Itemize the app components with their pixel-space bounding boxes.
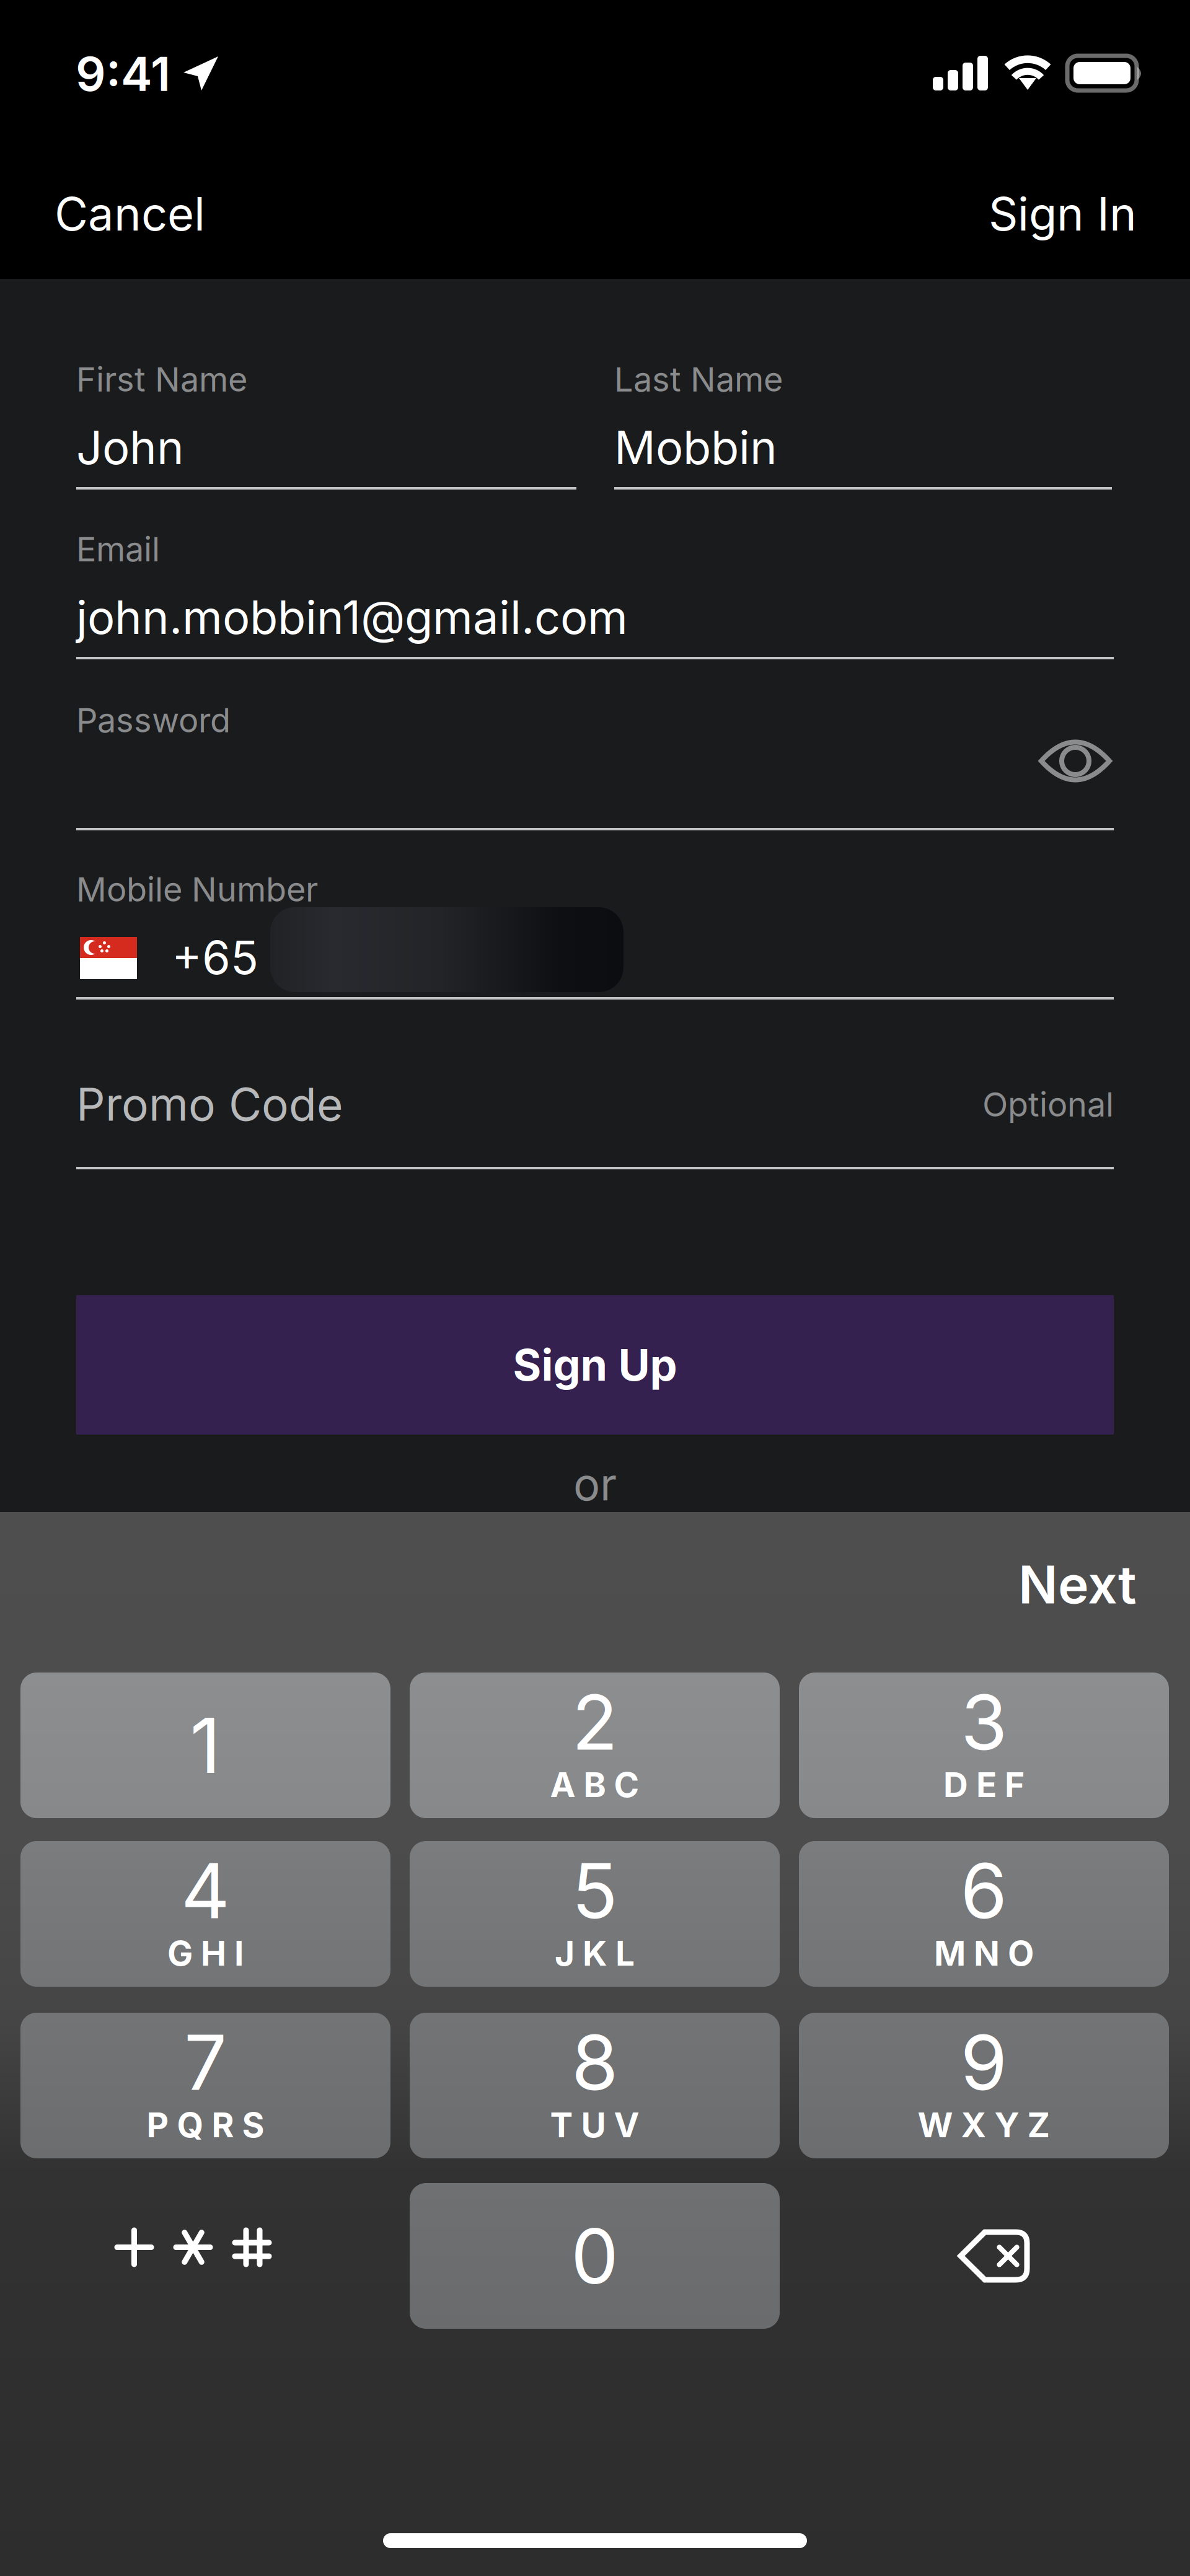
staticText: X (961, 2104, 986, 2145)
staticText: L (615, 1933, 635, 1974)
staticText: John (76, 420, 184, 475)
staticText: J (555, 1933, 575, 1974)
button[interactable]: 5 (410, 1841, 780, 1987)
staticText: 3 (961, 1676, 1007, 1768)
button[interactable]: Sign Up (76, 1295, 1114, 1435)
button[interactable]: Sign In (889, 186, 1137, 242)
button[interactable]: 2 (410, 1673, 780, 1818)
button[interactable]: Symbols (20, 2183, 390, 2329)
staticText: First Name (76, 359, 247, 399)
staticText: F (1005, 1764, 1025, 1805)
button[interactable]: Next (889, 1550, 1137, 1619)
staticText: Optional (982, 1084, 1114, 1124)
staticText: G (167, 1933, 193, 1974)
staticText: 2 (572, 1676, 618, 1768)
button[interactable]: Delete (799, 2183, 1169, 2329)
staticText: 9:41 (76, 45, 170, 102)
staticText: 6 (960, 1845, 1007, 1936)
staticText: +65 (172, 930, 258, 985)
staticText: H (201, 1933, 226, 1974)
staticText: W (918, 2104, 953, 2145)
button[interactable]: 1 (20, 1673, 390, 1818)
staticText: Promo Code (76, 1077, 343, 1132)
staticText: B (584, 1764, 606, 1805)
staticText: N (974, 1933, 1000, 1974)
staticText: Email (76, 529, 160, 569)
staticText: Q (177, 2104, 204, 2145)
staticText: Z (1027, 2104, 1050, 2145)
button[interactable]: 8 (410, 2013, 780, 2158)
staticText: john.mobbin1@gmail.com (76, 589, 628, 645)
staticText: Next (1018, 1553, 1137, 1616)
staticText: 9 (960, 2017, 1007, 2108)
button[interactable]: 4 (20, 1841, 390, 1987)
staticText: Cancel (55, 186, 205, 241)
button[interactable]: Show password (1038, 739, 1113, 783)
staticText: I (234, 1933, 244, 1974)
button[interactable]: 6 (799, 1841, 1169, 1987)
button[interactable]: 9 (799, 2013, 1169, 2158)
staticText: Y (994, 2104, 1019, 2145)
staticText: P (147, 2104, 169, 2145)
staticText: Sign In (989, 186, 1137, 241)
button[interactable]: 0 (410, 2183, 780, 2329)
staticText: M (934, 1933, 966, 1974)
staticText: 8 (571, 2017, 618, 2108)
staticText: E (976, 1764, 997, 1805)
button[interactable]: 7 (20, 2013, 390, 2158)
button[interactable]: 3 (799, 1673, 1169, 1818)
staticText: D (943, 1764, 968, 1805)
staticText: Mobile Number (76, 869, 318, 909)
staticText: V (614, 2104, 639, 2145)
staticText: 1 (190, 1700, 221, 1791)
staticText: C (614, 1764, 639, 1805)
staticText: K (583, 1933, 607, 1974)
staticText: Last Name (614, 359, 783, 399)
staticText: A (550, 1764, 575, 1805)
staticText: Sign Up (513, 1339, 677, 1391)
staticText: S (242, 2104, 264, 2145)
button[interactable]: Cancel (55, 186, 302, 242)
staticText: or (573, 1457, 617, 1511)
staticText: T (550, 2104, 573, 2145)
staticText: 5 (572, 1845, 618, 1936)
staticText: 7 (184, 2017, 227, 2108)
staticText: 0 (571, 2210, 619, 2302)
staticText: R (212, 2104, 234, 2145)
staticText: U (581, 2104, 606, 2145)
staticText: O (1008, 1933, 1034, 1974)
staticText: Mobbin (614, 420, 777, 475)
staticText: Password (76, 700, 231, 740)
staticText: 4 (181, 1845, 230, 1936)
